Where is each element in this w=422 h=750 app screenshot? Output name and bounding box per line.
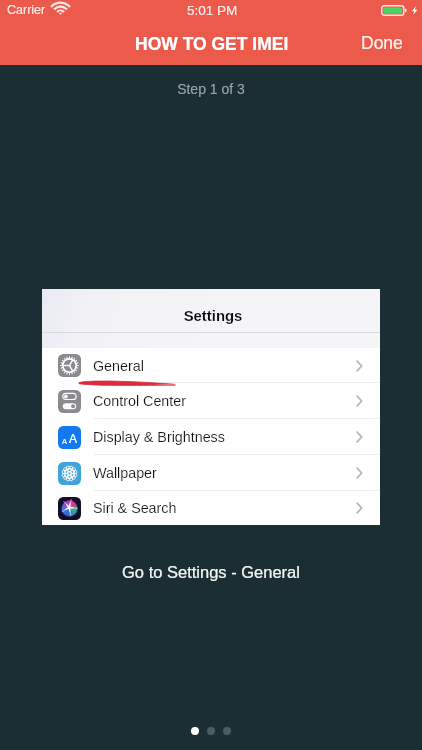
staticText: Control Center bbox=[93, 393, 186, 409]
staticText: Settings bbox=[44, 308, 382, 325]
staticText: General bbox=[93, 358, 144, 374]
button[interactable]: Done bbox=[342, 22, 422, 64]
button[interactable]: Wallpaper bbox=[42, 455, 380, 491]
button[interactable]: Siri & Search bbox=[42, 491, 380, 525]
staticText: A bbox=[62, 437, 68, 445]
button[interactable]: A bbox=[42, 419, 380, 455]
staticText: Display & Brightness bbox=[93, 429, 225, 445]
staticText: Carrier bbox=[7, 3, 46, 17]
staticText: Wallpaper bbox=[93, 465, 157, 481]
staticText: Siri & Search bbox=[93, 500, 177, 516]
staticText: Step 1 of 3 bbox=[0, 81, 422, 97]
button[interactable]: Control Center bbox=[42, 383, 380, 419]
staticText: 5:01 PM bbox=[187, 3, 238, 18]
staticText: Done bbox=[361, 33, 403, 53]
button[interactable]: General bbox=[42, 348, 380, 383]
staticText: Go to Settings - General bbox=[0, 563, 422, 581]
staticText: HOW TO GET IMEI bbox=[135, 34, 289, 54]
staticText: A bbox=[69, 432, 78, 445]
